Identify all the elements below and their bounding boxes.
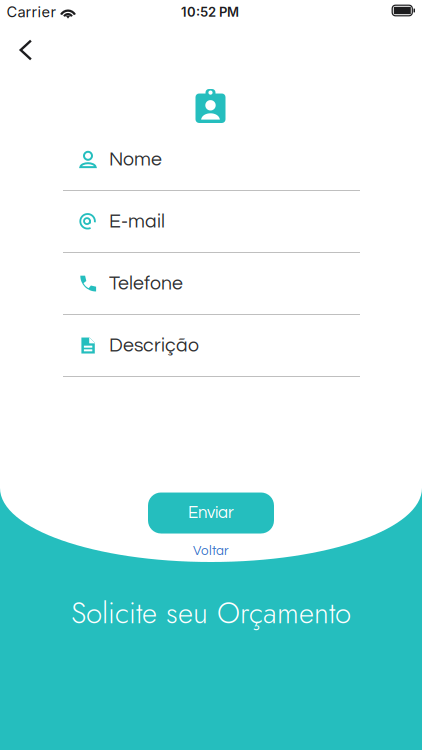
staticText: Carrier [6,3,56,21]
staticText: Enviar [188,504,234,522]
button[interactable]: Voltar [171,540,251,562]
staticText: Voltar [193,544,229,558]
staticText: Solicite seu Orçamento [71,592,351,634]
staticText: Telefone [109,273,183,293]
button[interactable]: Telefone [63,253,360,315]
button[interactable]: Back [4,28,48,72]
button[interactable]: Enviar [148,492,274,533]
staticText: Descrição [109,335,199,355]
button[interactable]: Nome [63,129,360,191]
staticText: E-mail [109,211,165,231]
button[interactable]: E-mail [63,191,360,253]
staticText: 10:52 PM [181,4,239,20]
button[interactable]: Descrição [63,315,360,377]
staticText: Nome [109,149,162,169]
